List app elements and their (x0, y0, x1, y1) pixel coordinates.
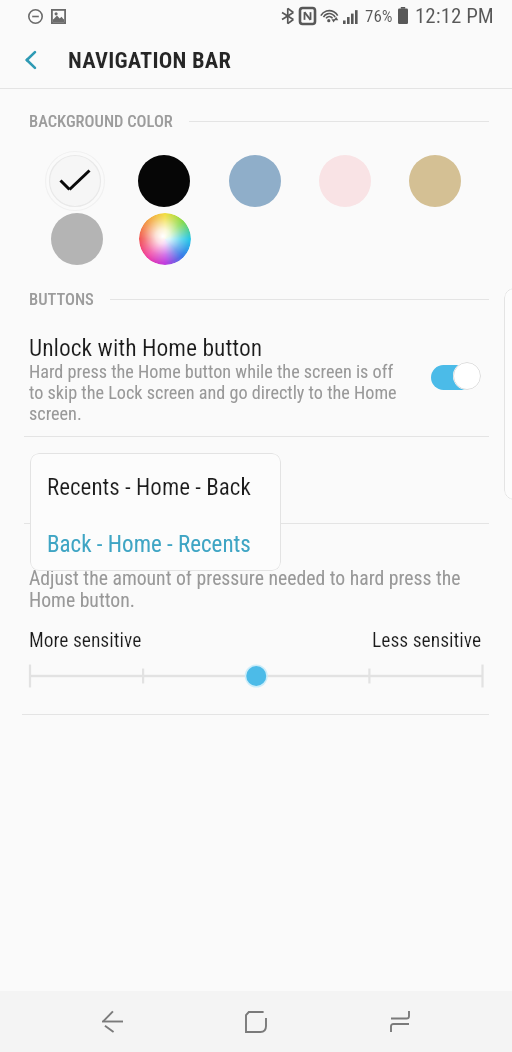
staticText: BUTTONS (29, 290, 94, 309)
button[interactable]: Home (216, 991, 296, 1052)
button[interactable]: Colour option (319, 155, 371, 207)
staticText: Hard press the Home button while the scr… (29, 361, 401, 424)
button[interactable]: Custom colour (139, 213, 191, 265)
button[interactable]: Back (72, 991, 152, 1052)
staticText: Recents - Home - Back (47, 474, 251, 501)
staticText: Adjust the amount of pressure needed to … (29, 567, 479, 612)
staticText: More sensitive (29, 629, 142, 652)
staticText: BACKGROUND COLOR (29, 112, 173, 131)
button[interactable]: Back (0, 32, 62, 88)
staticText: Back - Home - Recents (47, 531, 251, 558)
button[interactable]: Colour option (409, 155, 461, 207)
button[interactable]: Colour option (138, 155, 190, 207)
button[interactable]: Default colour, selected (45, 151, 105, 211)
staticText: 12:12 PM (415, 4, 494, 29)
button[interactable]: Colour option (51, 213, 103, 265)
staticText: Less sensitive (372, 629, 482, 652)
button[interactable]: Recent apps (360, 991, 440, 1052)
button[interactable]: Recents - Home - Back (30, 462, 281, 512)
staticText: Unlock with Home button (29, 334, 263, 362)
button[interactable]: Unlock with Home button, on (431, 362, 481, 390)
staticText: 76% (365, 6, 393, 26)
button[interactable]: Pressure sensitivity slider (20, 660, 492, 692)
button[interactable]: Back - Home - Recents (30, 519, 281, 569)
staticText: NAVIGATION BAR (68, 47, 232, 73)
button[interactable]: Colour option (229, 155, 281, 207)
